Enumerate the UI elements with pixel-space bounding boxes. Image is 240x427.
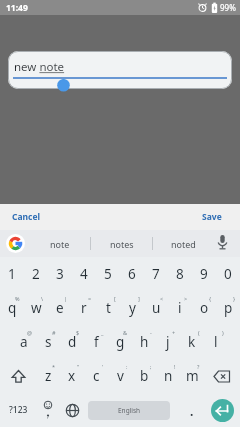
button[interactable]: Cancel: [6, 204, 47, 230]
staticText: 7: [152, 265, 160, 283]
button[interactable]: t: [96, 291, 120, 325]
button[interactable]: h: [132, 325, 156, 359]
staticText: }: [233, 295, 236, 302]
button[interactable]: m: [180, 359, 204, 393]
button[interactable]: x: [60, 359, 84, 393]
staticText: ?: [197, 363, 200, 370]
staticText: ]: [138, 295, 140, 302]
button[interactable]: 0: [216, 257, 240, 291]
staticText: >: [184, 295, 188, 302]
button[interactable]: 3: [48, 257, 72, 291]
staticText: =: [88, 295, 92, 302]
staticText: #: [52, 329, 56, 336]
staticText: u: [152, 299, 161, 317]
button[interactable]: n: [156, 359, 180, 393]
button[interactable]: 7: [144, 257, 168, 291]
staticText: %: [15, 295, 20, 302]
staticText: +: [172, 329, 176, 336]
staticText: l: [214, 333, 218, 351]
staticText: {: [209, 295, 212, 302]
button[interactable]: 9: [192, 257, 216, 291]
button[interactable]: d: [60, 325, 84, 359]
button[interactable]: [204, 393, 240, 427]
button[interactable]: w: [24, 291, 48, 325]
button[interactable]: ?123: [0, 393, 36, 427]
staticText: y: [129, 299, 136, 317]
button[interactable]: 1: [0, 257, 24, 291]
button[interactable]: v: [108, 359, 132, 393]
staticText: ;: [150, 363, 152, 370]
button[interactable]: English: [84, 393, 180, 427]
button[interactable]: l: [204, 325, 228, 359]
staticText: @: [27, 329, 32, 336]
button[interactable]: 4: [72, 257, 96, 291]
button[interactable]: i: [168, 291, 192, 325]
staticText: 6: [128, 265, 136, 283]
button[interactable]: notes: [91, 230, 152, 257]
button[interactable]: u: [144, 291, 168, 325]
button[interactable]: 6: [120, 257, 144, 291]
button[interactable]: [6, 234, 25, 253]
button[interactable]: [210, 230, 234, 257]
button[interactable]: .: [180, 393, 204, 427]
staticText: [: [114, 295, 116, 302]
button[interactable]: p: [216, 291, 240, 325]
staticText: &: [123, 329, 128, 336]
staticText: h: [140, 333, 149, 351]
button[interactable]: note: [30, 230, 90, 257]
staticText: 8: [176, 265, 184, 283]
button[interactable]: new note: [8, 51, 232, 89]
staticText: Cancel: [12, 211, 41, 223]
staticText: d: [68, 333, 77, 351]
button[interactable]: j: [156, 325, 180, 359]
button[interactable]: a: [12, 325, 36, 359]
staticText: |: [64, 295, 68, 302]
button[interactable]: b: [132, 359, 156, 393]
button[interactable]: [60, 393, 84, 427]
button[interactable]: k: [180, 325, 204, 359]
staticText: e: [56, 299, 64, 317]
staticText: $: [76, 329, 80, 336]
staticText: ?123: [9, 404, 28, 416]
button[interactable]: g: [108, 325, 132, 359]
staticText: :: [126, 363, 128, 370]
staticText: k: [188, 333, 196, 351]
staticText: m: [186, 367, 199, 385]
button[interactable]: c: [84, 359, 108, 393]
staticText: ": [77, 363, 80, 370]
staticText: 5: [104, 265, 112, 283]
button[interactable]: [0, 359, 36, 393]
staticText: new note: [14, 59, 65, 75]
button[interactable]: e: [48, 291, 72, 325]
button[interactable]: 5: [96, 257, 120, 291]
button[interactable]: [204, 359, 240, 393]
staticText: -: [150, 329, 152, 336]
button[interactable]: 2: [24, 257, 48, 291]
button[interactable]: f: [84, 325, 108, 359]
staticText: s: [45, 333, 52, 351]
staticText: t: [106, 299, 111, 317]
button[interactable]: q: [0, 291, 24, 325]
button[interactable]: z: [36, 359, 60, 393]
button[interactable]: noted: [153, 230, 214, 257]
staticText: (: [198, 329, 200, 336]
button[interactable]: s: [36, 325, 60, 359]
staticText: z: [45, 367, 52, 385]
staticText: f: [94, 333, 99, 351]
button[interactable]: r: [72, 291, 96, 325]
staticText: _: [101, 329, 104, 336]
button[interactable]: 8: [168, 257, 192, 291]
button[interactable]: [36, 393, 60, 427]
staticText: *: [52, 363, 56, 370]
button[interactable]: o: [192, 291, 216, 325]
staticText: .: [190, 403, 194, 419]
staticText: noted: [171, 238, 196, 250]
button[interactable]: Save: [196, 204, 228, 230]
staticText: 9: [200, 265, 208, 283]
button[interactable]: y: [120, 291, 144, 325]
staticText: 2: [32, 265, 40, 283]
staticText: i: [178, 299, 182, 317]
staticText: j: [166, 333, 170, 351]
staticText: 11:49: [6, 2, 28, 14]
staticText: a: [20, 333, 28, 351]
